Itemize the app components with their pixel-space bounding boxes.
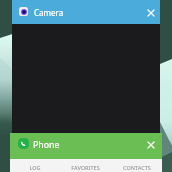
staticText: Camera (34, 7, 64, 18)
staticText: LOG (29, 164, 41, 171)
button[interactable]: CONTACTS (111, 159, 162, 172)
staticText: CONTACTS (123, 164, 151, 171)
button[interactable]: Close Phone (145, 139, 156, 150)
staticText: FAVORITES (71, 164, 100, 171)
button[interactable]: LOG (10, 159, 60, 172)
staticText: Phone (33, 139, 60, 151)
button[interactable]: Camera (12, 0, 160, 24)
button[interactable]: FAVORITES (60, 159, 111, 172)
button[interactable]: Close Camera (145, 7, 156, 18)
button[interactable]: Phone (10, 133, 162, 159)
